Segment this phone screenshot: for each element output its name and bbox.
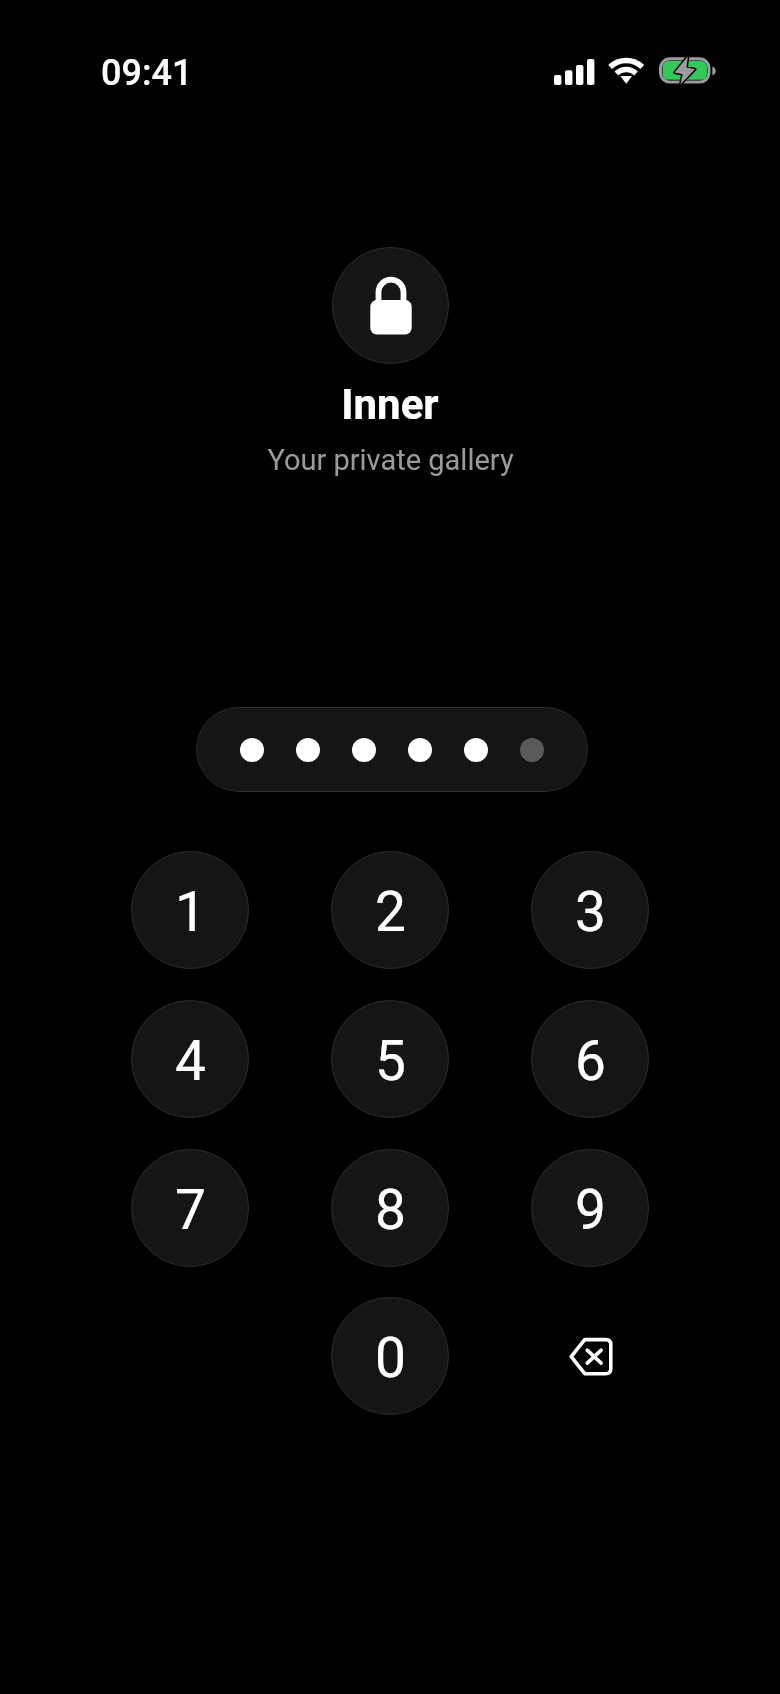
button[interactable]: 4 [131,1000,249,1118]
staticText: 6 [575,1029,606,1093]
staticText: 1 [175,880,206,944]
button[interactable]: 3 [531,851,649,969]
button[interactable]: 0 [331,1297,449,1415]
button[interactable]: 1 [131,851,249,969]
button[interactable]: Delete [531,1297,649,1415]
button[interactable]: 8 [331,1149,449,1267]
staticText: 09:41 [101,52,193,94]
staticText: 3 [575,880,606,944]
staticText: 5 [375,1029,406,1093]
other: Locked [332,247,449,364]
button[interactable]: 6 [531,1000,649,1118]
staticText: 7 [175,1178,206,1242]
staticText: 2 [375,880,406,944]
staticText: Your private gallery [267,443,514,477]
button[interactable]: 2 [331,851,449,969]
staticText: 8 [375,1178,406,1242]
staticText: 0 [375,1326,406,1390]
staticText: 9 [575,1178,606,1242]
staticText: 4 [175,1029,206,1093]
button[interactable]: 9 [531,1149,649,1267]
button[interactable]: 7 [131,1149,249,1267]
staticText: Inner [341,380,439,429]
button[interactable]: 5 [331,1000,449,1118]
